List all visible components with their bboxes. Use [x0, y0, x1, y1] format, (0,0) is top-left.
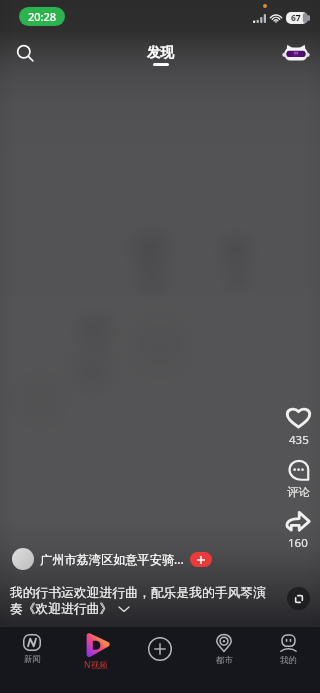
button[interactable]: 我的	[256, 627, 320, 693]
button[interactable]: 我的行书运欢迎进行曲，配乐是我的手风琴演	[10, 585, 276, 617]
staticText: 67	[291, 12, 301, 24]
staticText: 我的	[280, 655, 297, 666]
staticText: 新闻	[24, 654, 41, 665]
staticText: 评论	[287, 485, 310, 499]
button[interactable]: AI assistant	[278, 35, 314, 71]
button[interactable]: 都市	[192, 627, 256, 693]
button[interactable]: 发现	[147, 44, 174, 66]
staticText: 160	[288, 535, 308, 551]
staticText: 435	[289, 432, 309, 448]
staticText: 广州市荔湾区如意平安骑...	[40, 551, 184, 568]
button[interactable]: 新闻	[0, 627, 64, 693]
staticText: N视频	[84, 659, 108, 671]
button[interactable]: Follow	[190, 552, 212, 567]
button[interactable]: N视频	[64, 627, 128, 693]
staticText: 奏《欢迎进行曲》	[10, 601, 113, 617]
button[interactable]: Create	[128, 627, 192, 693]
staticText: 20:28	[28, 9, 57, 24]
button[interactable]: Comment	[287, 460, 310, 499]
button[interactable]: Like	[286, 407, 311, 448]
button[interactable]: Share	[286, 511, 310, 551]
button[interactable]: 广州市荔湾区如意平安骑...	[12, 548, 228, 570]
button[interactable]: More	[287, 587, 310, 610]
staticText: 我的行书运欢迎进行曲，配乐是我的手风琴演	[10, 585, 266, 601]
staticText: 都市	[216, 655, 233, 666]
staticText: 发现	[147, 44, 174, 61]
button[interactable]: Search	[6, 34, 44, 72]
